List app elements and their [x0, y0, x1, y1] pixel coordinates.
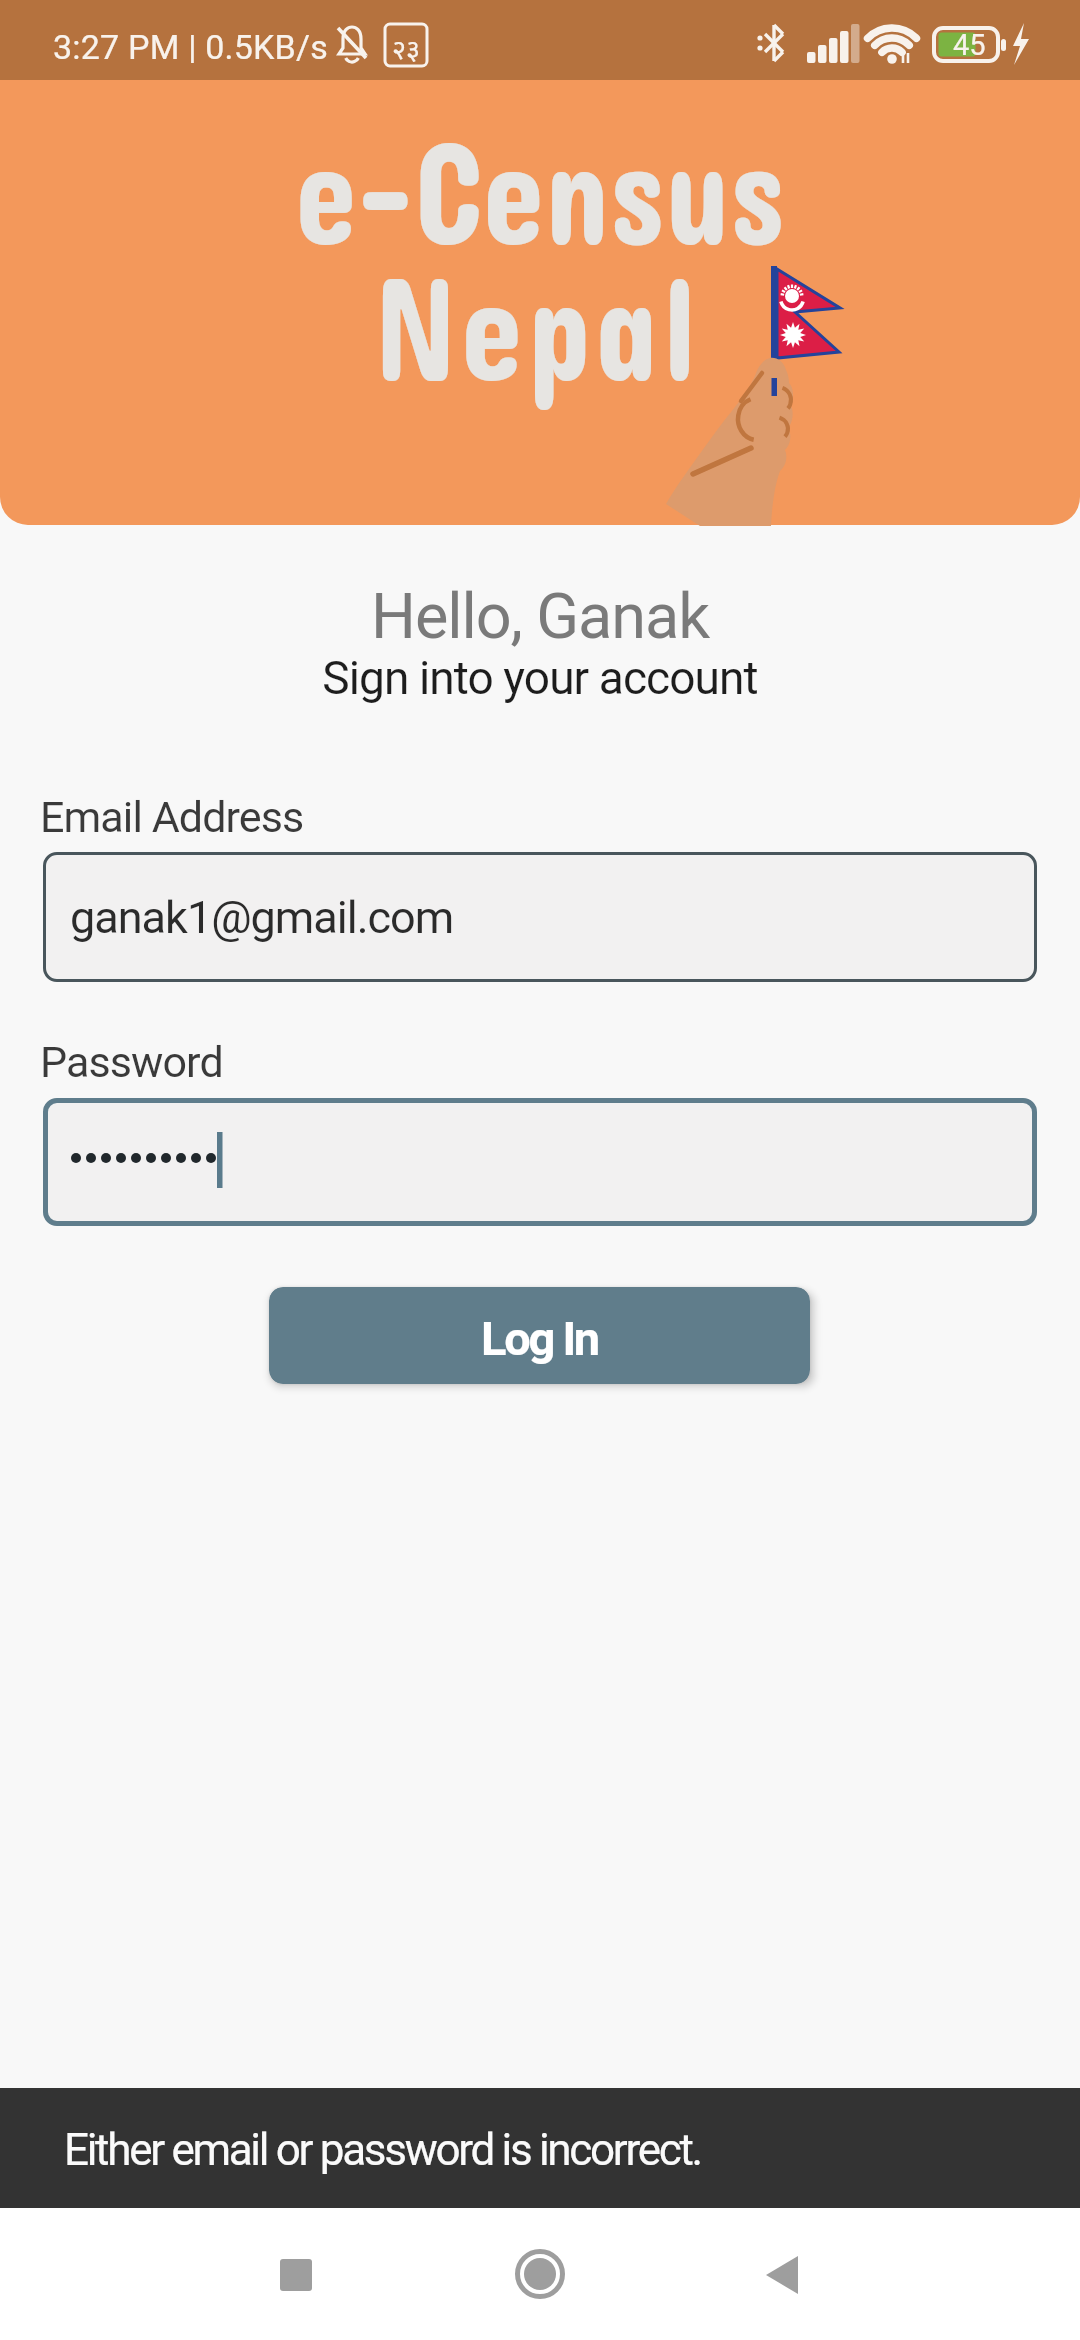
staticText: Email Address	[40, 792, 304, 842]
staticText: Sign into your account	[0, 651, 1080, 705]
staticText: e-Census	[0, 99, 1080, 275]
button[interactable]	[496, 2230, 584, 2318]
staticText: Password	[40, 1037, 223, 1087]
staticText: Nepal	[0, 235, 1078, 411]
staticText: Log In	[481, 1311, 598, 1366]
staticText: Either email or password is incorrect.	[64, 2124, 701, 2176]
staticText: 45	[953, 28, 986, 62]
staticText: ganak1@gmail.com	[70, 891, 454, 944]
button[interactable]	[736, 2231, 824, 2319]
button[interactable]: ganak1@gmail.com	[43, 852, 1037, 982]
staticText: 3:27 PM | 0.5KB/s	[53, 27, 328, 67]
staticText: Hello, Ganak	[0, 580, 1080, 654]
button[interactable]	[252, 2231, 340, 2319]
button[interactable]: Log In	[269, 1287, 810, 1384]
button[interactable]	[43, 1098, 1037, 1226]
staticText: २३	[392, 30, 421, 67]
